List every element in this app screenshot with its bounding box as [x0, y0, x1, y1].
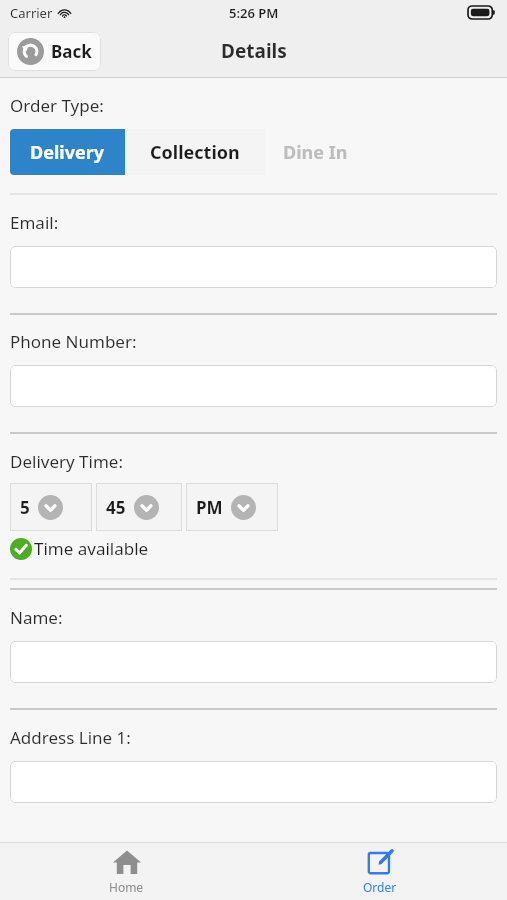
staticText: Home	[109, 879, 144, 895]
staticText: Email:	[10, 211, 59, 234]
staticText: Carrier	[10, 4, 53, 22]
button[interactable]: Delivery	[10, 129, 125, 175]
staticText: Delivery	[30, 140, 105, 165]
staticText: Order	[363, 879, 397, 895]
staticText: Dine In	[283, 140, 348, 165]
staticText: Details	[221, 38, 287, 64]
staticText: 5:26 PM	[229, 4, 279, 22]
staticText: 45	[106, 496, 126, 519]
staticText: 5	[20, 496, 30, 519]
button[interactable]	[10, 641, 497, 683]
button[interactable]	[10, 761, 497, 803]
button[interactable]: Collection	[125, 129, 265, 175]
button[interactable]: PM	[186, 483, 278, 531]
button[interactable]	[10, 246, 497, 288]
staticText: Address Line 1:	[10, 726, 131, 749]
staticText: PM	[196, 496, 223, 519]
button[interactable]: Order	[253, 842, 507, 900]
staticText: Name:	[10, 606, 63, 629]
button[interactable]: Dine In	[265, 129, 365, 175]
staticText: Collection	[150, 140, 240, 165]
button[interactable]: Back	[8, 32, 101, 71]
button[interactable]	[10, 365, 497, 407]
staticText: Phone Number:	[10, 330, 137, 353]
button[interactable]: Home	[0, 842, 253, 900]
staticText: Back	[51, 40, 92, 63]
staticText: Time available	[34, 537, 149, 560]
button[interactable]: 5	[10, 483, 92, 531]
button[interactable]: 45	[96, 483, 182, 531]
staticText: Order Type:	[10, 94, 104, 117]
staticText: Delivery Time:	[10, 450, 123, 473]
